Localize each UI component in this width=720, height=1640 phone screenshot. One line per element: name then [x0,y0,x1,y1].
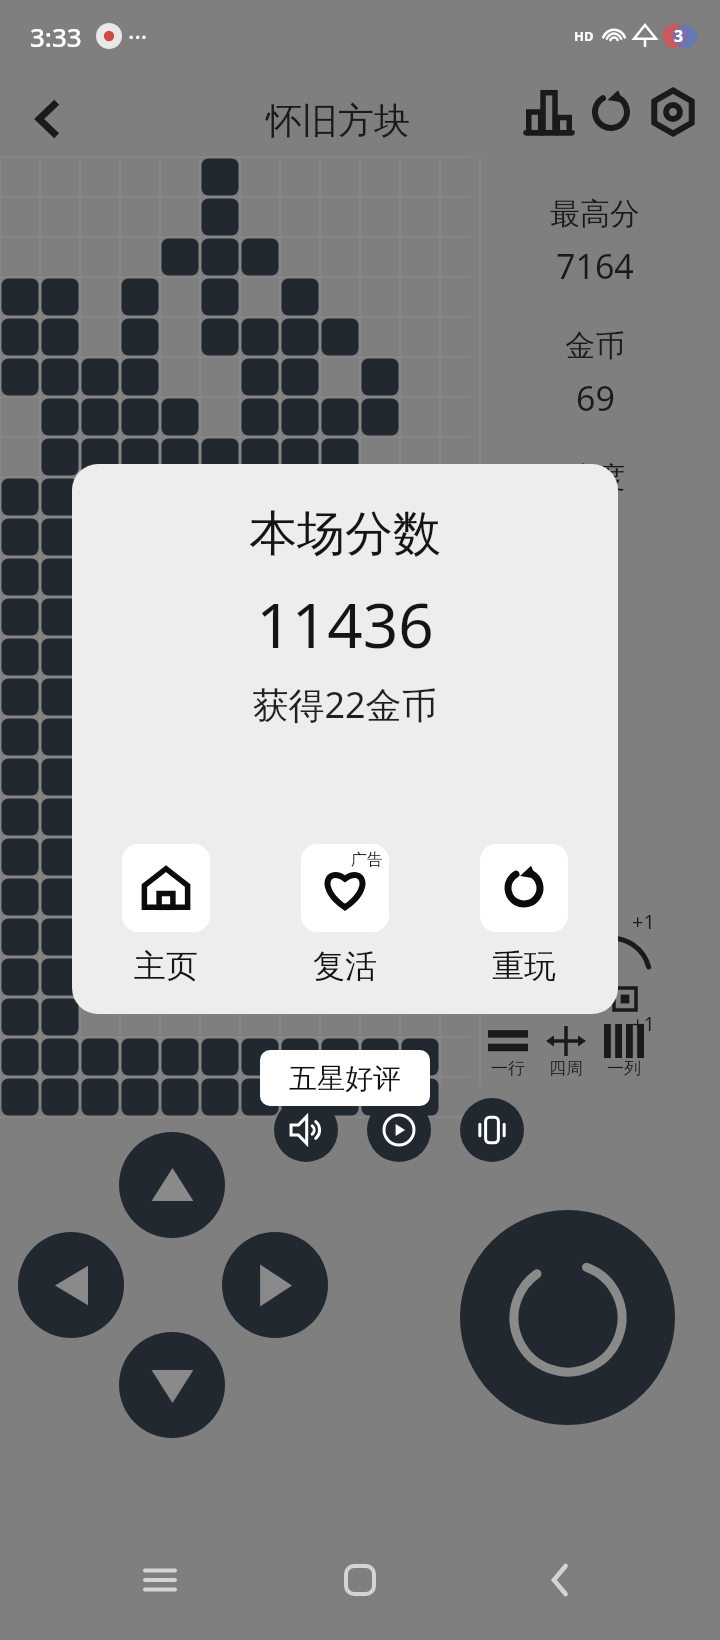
staticText: 3 [674,25,684,47]
button[interactable]: Play [367,1098,431,1162]
staticText: 69 [576,375,615,421]
staticText: 重玩 [492,946,556,986]
button[interactable]: 五星好评 [260,1050,430,1106]
staticText: ··· [128,20,148,53]
staticText: 7164 [556,243,634,289]
staticText: 一行 [491,1058,525,1079]
staticText: 获得22金币 [252,680,438,729]
button[interactable]: Restart [580,81,642,143]
button[interactable]: Back [520,1540,600,1620]
button[interactable]: Up [119,1132,225,1238]
staticText: +1 [632,1010,655,1037]
staticText: 11436 [256,582,434,666]
button[interactable]: 一行 [488,1024,528,1079]
staticText: 四周 [549,1058,583,1079]
button[interactable]: 四周 [546,1024,586,1079]
staticText: 金币 [565,327,625,365]
button[interactable]: 重玩 [480,844,568,986]
staticText: 一列 [607,1058,641,1079]
button[interactable]: Home [320,1540,400,1620]
staticText: 本场分数 [249,504,441,564]
button[interactable]: Ranking [518,81,580,143]
button[interactable]: Back [20,91,76,147]
button[interactable]: Left [18,1232,124,1338]
staticText: 速度 [565,459,625,497]
button[interactable]: Right [222,1232,328,1338]
staticText: 主页 [134,946,198,986]
staticText: 3:33 [30,19,82,54]
button[interactable]: 一列 [604,1024,644,1079]
staticText: 怀旧方块 [266,98,410,143]
staticText: 广告 [351,850,383,870]
staticText: +1 [632,908,655,935]
staticText: 复活 [313,946,377,986]
button[interactable]: Down [119,1332,225,1438]
button[interactable]: Vibrate [460,1098,524,1162]
staticText: 五星好评 [289,1061,401,1096]
staticText: 最高分 [550,195,640,233]
button[interactable]: Sound [274,1098,338,1162]
button[interactable]: 主页 [122,844,210,986]
button[interactable]: Settings [642,81,704,143]
staticText: HD [574,27,594,45]
button[interactable]: 广告 [301,844,389,986]
button[interactable]: Recents [120,1540,200,1620]
button[interactable]: Rotate [460,1210,675,1425]
